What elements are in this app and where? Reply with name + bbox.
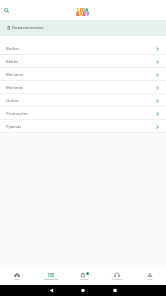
button[interactable]: Meninos <box>0 68 166 81</box>
staticText: Carrinho <box>80 278 88 281</box>
staticText: Promoções <box>6 111 29 117</box>
staticText: Departamentos <box>44 278 58 281</box>
staticText: Departamentos <box>12 25 44 31</box>
button[interactable]: Meninas <box>0 81 166 94</box>
button[interactable]: Departamentos <box>34 268 67 285</box>
button[interactable]: Promoções <box>0 107 166 120</box>
button[interactable]: Pijamas <box>0 120 166 133</box>
button[interactable]: Conta <box>133 268 166 285</box>
staticText: BABY <box>76 11 90 18</box>
button[interactable]: Bebês <box>0 55 166 68</box>
staticText: Outlet <box>6 98 19 104</box>
staticText: Meninas <box>6 85 23 91</box>
staticText: Conta <box>147 278 153 281</box>
staticText: Meninos <box>6 72 23 78</box>
button[interactable]: Search <box>2 5 13 16</box>
staticText: Bebês <box>6 59 19 65</box>
button[interactable]: Home <box>0 268 34 285</box>
staticText: Bodies <box>6 46 20 52</box>
button[interactable]: Carrinho <box>67 268 100 285</box>
staticText: Home <box>14 278 20 281</box>
staticText: Atendimento <box>111 278 123 281</box>
staticText: LOJA <box>77 7 89 13</box>
button[interactable]: Bodies <box>0 42 166 55</box>
button[interactable]: Atendimento <box>100 268 133 285</box>
staticText: Pijamas <box>6 124 22 130</box>
button[interactable]: Outlet <box>0 94 166 107</box>
